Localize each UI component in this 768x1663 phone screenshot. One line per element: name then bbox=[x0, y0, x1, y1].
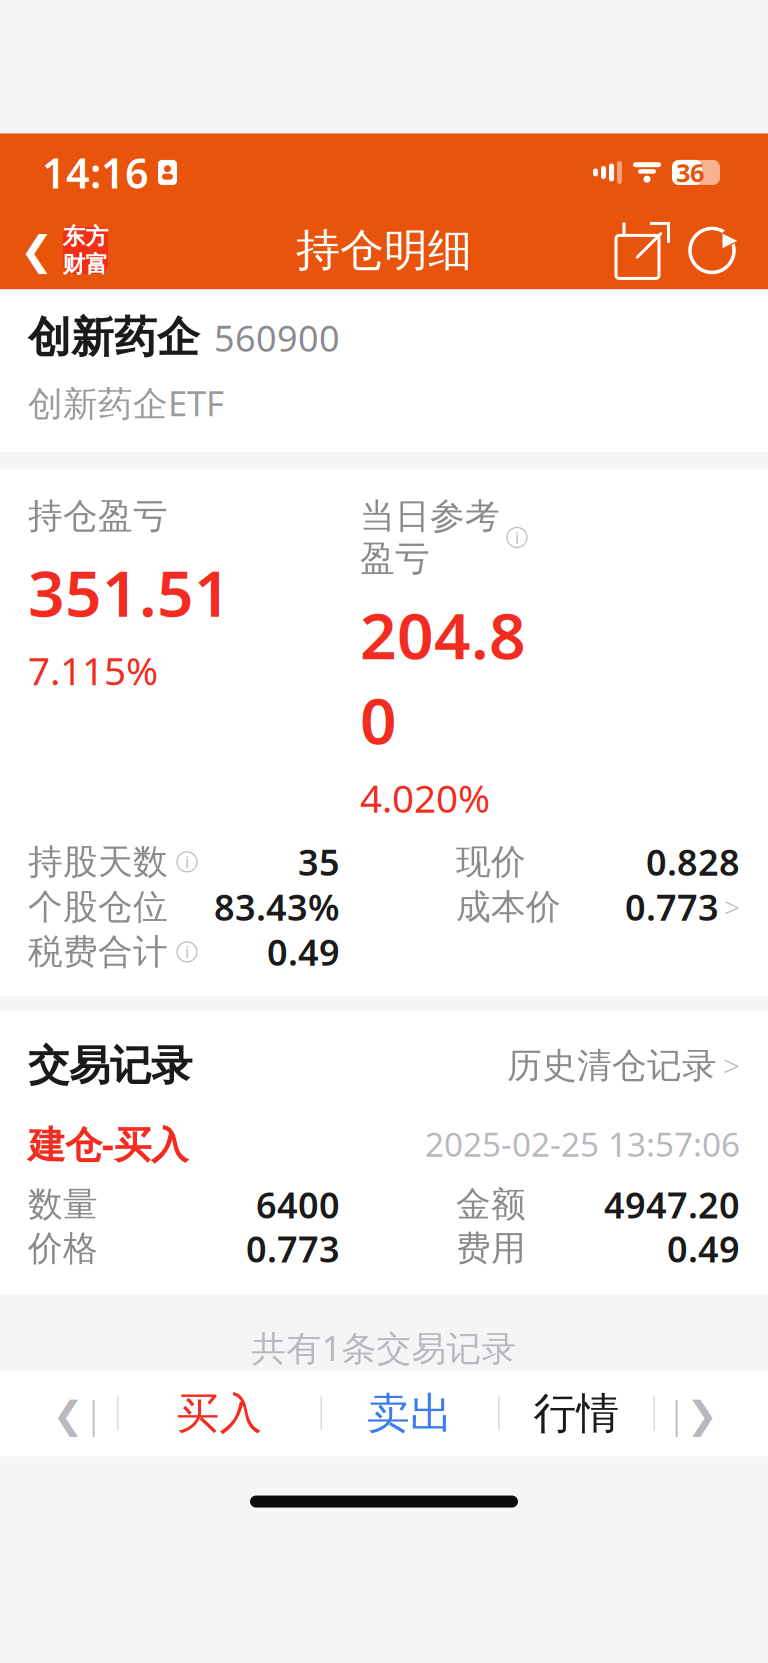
staticText: 6400 bbox=[256, 1181, 340, 1228]
staticText: i bbox=[515, 527, 519, 548]
staticText bbox=[168, 929, 177, 975]
staticText: 当日参考盈亏 bbox=[360, 495, 500, 580]
staticText: 0.773 bbox=[246, 1225, 340, 1272]
staticText: 83.43% bbox=[214, 883, 340, 931]
button[interactable]: 历史清仓记录 bbox=[507, 1038, 740, 1093]
button[interactable]: 买入 bbox=[118, 1371, 320, 1457]
staticText: 0.49 bbox=[267, 928, 340, 976]
staticText: 351.51 bbox=[28, 549, 231, 634]
staticText: 费用 bbox=[456, 1227, 526, 1270]
staticText: 买入 bbox=[176, 1387, 262, 1440]
staticText: 数量 bbox=[28, 1183, 98, 1226]
staticText: 交易记录 bbox=[28, 1040, 192, 1091]
staticText: 36 bbox=[676, 156, 704, 189]
staticText: 0.828 bbox=[646, 838, 740, 886]
staticText: ❮| bbox=[52, 1389, 103, 1438]
staticText: |❯ bbox=[666, 1389, 717, 1438]
staticText: 持股天数 bbox=[28, 841, 168, 883]
staticText: 创新药企 bbox=[28, 311, 200, 364]
staticText: 金额 bbox=[456, 1183, 526, 1226]
staticText: 4.020% bbox=[360, 772, 490, 823]
staticText: 财 bbox=[62, 250, 85, 278]
staticText: 行情 bbox=[533, 1387, 619, 1440]
staticText: 东 bbox=[62, 223, 85, 250]
staticText: 2025-02-25 13:57:06 bbox=[425, 1122, 740, 1166]
staticText: 35 bbox=[298, 838, 340, 886]
button[interactable]: 分享 bbox=[616, 222, 672, 278]
staticText: 卖出 bbox=[367, 1387, 453, 1440]
button[interactable]: 返回 东方财富 bbox=[0, 217, 108, 284]
staticText: 创新药企ETF bbox=[28, 380, 224, 426]
staticText: 0.49 bbox=[667, 1225, 740, 1272]
staticText: 价格 bbox=[28, 1227, 98, 1270]
staticText: 14:16 bbox=[42, 145, 149, 200]
staticText: > bbox=[723, 1046, 740, 1085]
button[interactable]: 上一个 bbox=[39, 1371, 117, 1457]
staticText: i bbox=[185, 851, 189, 872]
staticText: 富 bbox=[85, 250, 108, 278]
staticText: 成本价 bbox=[456, 886, 561, 928]
button[interactable]: 卖出 bbox=[322, 1371, 498, 1457]
staticText: 4947.20 bbox=[604, 1181, 740, 1228]
staticText: 7.115% bbox=[28, 644, 158, 696]
staticText: 个股仓位 bbox=[28, 886, 168, 928]
button[interactable]: 行情 bbox=[499, 1371, 653, 1457]
staticText: 持仓盈亏 bbox=[28, 495, 168, 537]
staticText: 持仓明细 bbox=[296, 223, 472, 277]
staticText: 方 bbox=[85, 223, 108, 250]
staticText: > bbox=[724, 888, 740, 925]
staticText: 税费合计 bbox=[28, 931, 168, 973]
staticText: 0.773 bbox=[625, 883, 719, 931]
staticText bbox=[168, 839, 177, 885]
staticText: 204.80 bbox=[360, 592, 526, 762]
staticText: 560900 bbox=[214, 314, 340, 362]
staticText: 建仓-买入 bbox=[28, 1119, 188, 1168]
button[interactable]: 成本价 bbox=[456, 883, 740, 931]
button[interactable]: 刷新 bbox=[684, 222, 740, 278]
staticText: i bbox=[185, 941, 189, 962]
staticText: 现价 bbox=[456, 841, 526, 883]
staticText: 共有1条交易记录 bbox=[251, 1324, 516, 1370]
staticText: 历史清仓记录 bbox=[507, 1044, 717, 1087]
staticText: ▸ bbox=[722, 222, 737, 255]
staticText: ❮ bbox=[20, 228, 54, 273]
button[interactable]: 下一个 bbox=[655, 1371, 729, 1457]
